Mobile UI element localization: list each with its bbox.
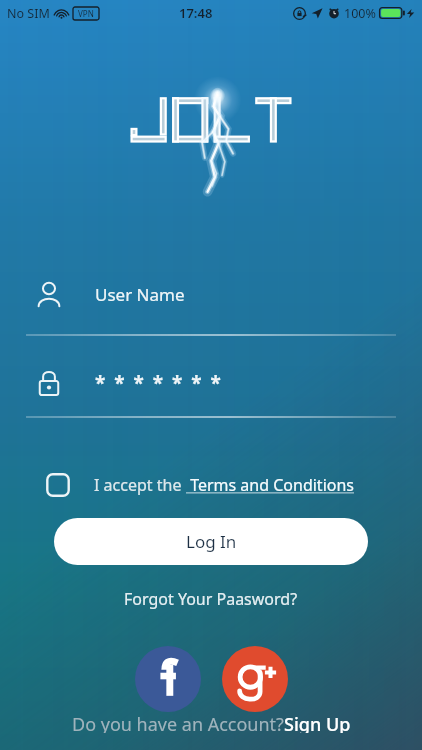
staticText: Terms and Conditions — [186, 474, 359, 496]
button[interactable]: User — [0, 274, 422, 314]
button[interactable]: Sign Up — [284, 712, 351, 733]
staticText: No SIM — [7, 5, 50, 22]
staticText: * * * * * * * — [95, 370, 223, 396]
other: Password — [35, 369, 63, 397]
button[interactable]: Password — [0, 363, 422, 403]
staticText: 17:48 — [179, 4, 213, 22]
staticText: 100% — [344, 5, 376, 22]
staticText: I accept the — [94, 474, 186, 496]
staticText: Forgot Your Paasword? — [124, 588, 298, 610]
staticText: VPN — [78, 8, 94, 19]
staticText: Sign Up — [284, 712, 351, 733]
button[interactable]: Sign in with Facebook — [135, 646, 201, 712]
button[interactable]: Accept terms and conditions — [46, 473, 70, 497]
staticText: Do you have an Account? — [72, 712, 284, 733]
button[interactable]: Log In — [54, 518, 368, 565]
button[interactable]: Terms and Conditions — [186, 474, 359, 496]
staticText: User Name — [95, 283, 185, 306]
staticText: Log In — [186, 530, 237, 553]
button[interactable]: Sign in with Google Plus — [222, 646, 288, 712]
button[interactable]: Forgot Your Paasword? — [112, 584, 310, 614]
other: User — [35, 280, 63, 308]
